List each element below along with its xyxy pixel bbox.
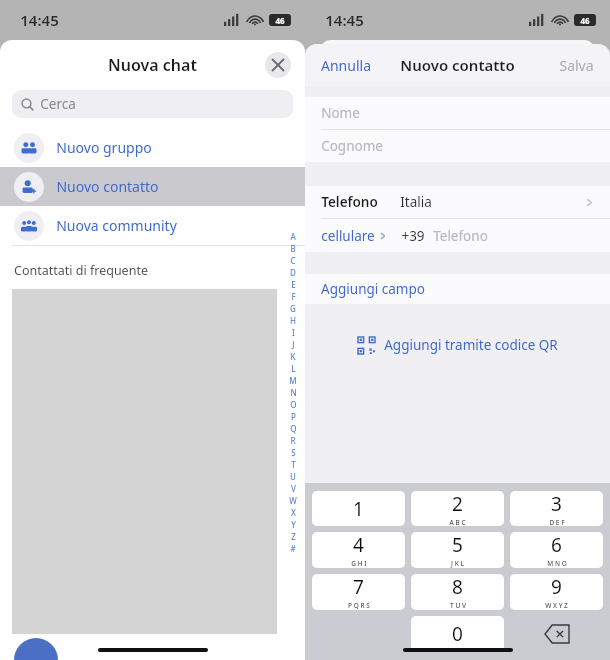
staticText: T [291, 459, 296, 470]
staticText: 0 [452, 621, 463, 647]
staticText: M [289, 375, 297, 386]
staticText: Cognome [321, 137, 383, 155]
button[interactable]: Annulla [321, 56, 371, 75]
button[interactable]: 9 [510, 574, 603, 610]
button[interactable]: Aggiungi tramite codice QR [305, 330, 610, 360]
staticText: M N O [547, 559, 567, 568]
button[interactable]: Cancella [507, 613, 606, 655]
staticText: Aggiungi campo [321, 280, 425, 298]
staticText: Nome [321, 104, 360, 122]
staticText: # [290, 543, 296, 554]
staticText: Cerca [40, 95, 76, 113]
button[interactable]: 8 [411, 574, 504, 610]
staticText: Q [290, 423, 297, 434]
staticText: U [290, 471, 296, 482]
button[interactable]: Nuova community [0, 206, 305, 245]
staticText: P Q R S [348, 601, 370, 610]
staticText: E [291, 279, 296, 290]
staticText: 2 [452, 491, 463, 517]
staticText: 14:45 [325, 10, 364, 30]
staticText: A [290, 231, 296, 242]
staticText: 14:45 [20, 10, 59, 30]
staticText: 6 [551, 532, 562, 558]
staticText: C [290, 255, 296, 266]
staticText: Nuovo contatto [56, 177, 159, 196]
staticText: Y [291, 519, 296, 530]
staticText: V [291, 483, 296, 494]
staticText: W [289, 495, 297, 506]
staticText: H [290, 315, 296, 326]
button[interactable]: Cerca [12, 90, 293, 118]
staticText: S [291, 447, 296, 458]
button[interactable]: Nuova chat [14, 638, 58, 660]
staticText: 3 [551, 491, 562, 517]
staticText: R [290, 435, 296, 446]
staticText: B [290, 243, 296, 254]
staticText: 46 [580, 15, 590, 26]
staticText: L [291, 363, 296, 374]
staticText: N [290, 387, 297, 398]
button[interactable]: 1 [312, 491, 405, 526]
staticText: Italia [400, 193, 432, 211]
button[interactable]: Chiudi [265, 52, 291, 78]
staticText: J K L [451, 559, 464, 568]
staticText: Contattati di frequente [14, 262, 148, 279]
staticText: 9 [551, 574, 562, 600]
button[interactable]: Aggiungi campo [305, 274, 610, 304]
staticText: G [290, 303, 296, 314]
button[interactable]: 5 [411, 532, 504, 568]
staticText: P [291, 411, 296, 422]
staticText: 4 [353, 532, 364, 558]
staticText: A B C [449, 518, 466, 526]
staticText: Nuova chat [108, 54, 197, 76]
button[interactable]: 3 [510, 491, 603, 526]
button[interactable]: 6 [510, 532, 603, 568]
button[interactable]: 4 [312, 532, 405, 568]
button[interactable]: cellulare [305, 219, 610, 252]
staticText: G H I [351, 559, 367, 568]
staticText: +39 [401, 227, 425, 245]
staticText: Z [291, 531, 296, 542]
staticText: T U V [450, 601, 466, 610]
staticText: X [291, 507, 296, 518]
staticText: Nuovo contatto [400, 55, 515, 75]
staticText: D [290, 267, 296, 278]
staticText: Aggiungi tramite codice QR [384, 336, 558, 354]
staticText: Nuovo gruppo [56, 138, 152, 157]
staticText: K [290, 351, 296, 362]
staticText: F [291, 291, 296, 302]
button[interactable]: Telefono [305, 186, 610, 218]
staticText: I [292, 327, 295, 338]
staticText: J [292, 339, 295, 350]
staticText: 1 [353, 496, 364, 522]
button[interactable]: Cognome [305, 130, 610, 162]
button[interactable]: Nome [305, 97, 610, 129]
button[interactable]: 2 [411, 491, 504, 526]
staticText: W X Y Z [545, 601, 568, 610]
staticText: Telefono [433, 227, 488, 245]
staticText: O [290, 399, 297, 410]
staticText: Nuova community [56, 216, 177, 235]
button[interactable]: Salva [559, 56, 594, 75]
staticText: cellulare [321, 227, 375, 245]
button[interactable]: Nuovo gruppo [0, 128, 305, 167]
button[interactable]: Nuovo contatto [0, 167, 305, 206]
staticText: 46 [275, 15, 285, 26]
staticText: 7 [353, 574, 364, 600]
staticText: D E F [549, 518, 565, 526]
button[interactable]: 0 [411, 616, 504, 652]
button[interactable]: 7 [312, 574, 405, 610]
staticText: 8 [452, 574, 463, 600]
staticText: Telefono [321, 193, 378, 211]
staticText: 5 [452, 532, 463, 558]
